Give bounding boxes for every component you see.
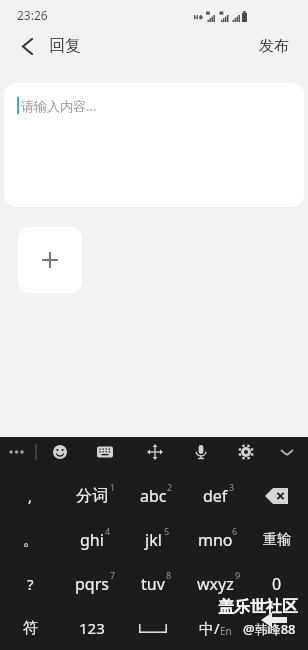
staticText: 回复 — [49, 36, 81, 56]
staticText: 123 — [79, 618, 105, 638]
button[interactable] — [246, 473, 308, 518]
button[interactable]: 中/ — [184, 606, 246, 650]
staticText: pqrs — [75, 573, 109, 595]
staticText: 2 — [167, 481, 173, 493]
button[interactable]: pqrs — [61, 562, 122, 606]
button[interactable]: abc — [122, 473, 184, 518]
staticText: tuv — [141, 573, 165, 595]
button[interactable]: tuv — [122, 562, 184, 606]
staticText: 盖乐世社区 — [218, 597, 298, 617]
staticText: 1 — [110, 481, 116, 493]
staticText: jkl — [145, 529, 162, 551]
staticText: 请输入内容... — [21, 97, 97, 115]
button[interactable] — [246, 606, 308, 650]
button[interactable]: 符 — [0, 606, 61, 650]
staticText: 发布 — [259, 37, 289, 56]
button[interactable]: def — [184, 473, 246, 518]
button[interactable]: 0 — [246, 562, 308, 606]
staticText: 8 — [166, 569, 172, 581]
staticText: wxyz — [197, 573, 234, 595]
staticText: def — [203, 485, 228, 507]
button[interactable]: 。 — [0, 518, 61, 562]
staticText: 中/ — [199, 618, 220, 638]
button[interactable]: ? — [0, 562, 61, 606]
staticText: ghi — [80, 529, 104, 551]
staticText: 符 — [23, 619, 38, 638]
staticText: 0 — [272, 573, 282, 595]
staticText: 4 — [105, 525, 111, 537]
staticText: 9 — [235, 569, 241, 581]
staticText: 重输 — [263, 531, 291, 549]
button[interactable]: wxyz — [184, 562, 246, 606]
button[interactable]: mno — [184, 518, 246, 562]
button[interactable] — [18, 227, 82, 293]
staticText: 6 — [232, 525, 238, 537]
button[interactable]: jkl — [122, 518, 184, 562]
button[interactable]: 重输 — [246, 518, 308, 562]
button[interactable]: 请输入内容... — [4, 83, 304, 207]
button[interactable] — [122, 606, 184, 650]
staticText: @韩峰88 — [243, 620, 296, 638]
button[interactable]: 123 — [61, 606, 122, 650]
button[interactable]: 发布 — [259, 37, 289, 56]
staticText: ? — [27, 574, 34, 594]
button[interactable] — [15, 34, 39, 58]
button[interactable]: 分词 — [61, 473, 122, 518]
staticText: En — [220, 624, 232, 638]
staticText: 3 — [229, 481, 235, 493]
button[interactable]: ghi — [61, 518, 122, 562]
staticText: mno — [198, 529, 233, 551]
staticText: abc — [140, 485, 167, 507]
staticText: 分词 — [76, 486, 108, 506]
staticText: , — [28, 486, 33, 506]
button[interactable]: , — [0, 473, 61, 518]
staticText: 23:26 — [17, 7, 48, 23]
staticText: 7 — [110, 569, 116, 581]
staticText: 5 — [164, 525, 170, 537]
staticText: 。 — [23, 531, 38, 550]
